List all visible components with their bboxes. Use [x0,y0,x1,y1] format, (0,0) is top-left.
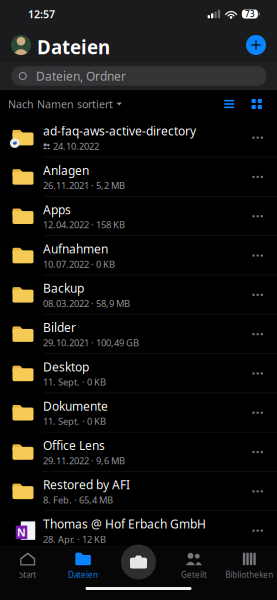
button[interactable]: Scan document [121,544,156,579]
staticText: Restored by AFI [43,477,130,493]
staticText: Office Lens [43,437,105,453]
staticText: 12:57 [28,7,55,21]
staticText: ad-faq-aws-active-directory [43,123,196,139]
staticText: Start [19,569,36,580]
staticText: Dateien [37,35,110,59]
staticText: 08.03.2022 · 58,9 MB [43,297,130,309]
button[interactable]: Dateien [55,548,111,584]
button[interactable]: Grid view [243,93,270,115]
button[interactable]: Backup [0,275,277,314]
button[interactable]: Geteilt [166,548,222,584]
button[interactable]: Account [11,35,31,55]
staticText: Apps [43,202,71,217]
button[interactable]: N [0,511,277,550]
staticText: 29.11.2022 · 9,6 MB [43,454,125,467]
staticText: Thomas @ Hof Erbach GmbH [43,516,206,532]
staticText: Bilder [43,319,76,335]
staticText: 73 [245,9,255,19]
button[interactable]: Bilder [0,314,277,354]
button[interactable]: ad-faq-aws-active-directory [0,118,277,157]
button[interactable]: Dokumente [0,393,277,432]
button[interactable]: Office Lens [0,432,277,472]
staticText: 24.10.2022 [53,140,99,152]
button[interactable]: Restored by AFI [0,472,277,511]
staticText: 29.10.2021 · 100,49 GB [43,336,139,349]
staticText: 12.04.2022 · 158 KB [43,218,125,231]
staticText: 11. Sept. · 0 KB [43,376,106,388]
button[interactable]: Anlagen [0,157,277,197]
staticText: Bibliotheken [225,569,273,580]
staticText: Aufnahmen [43,241,108,257]
button[interactable]: Aufnahmen [0,236,277,275]
button[interactable] [111,548,166,584]
staticText: Backup [43,280,84,296]
staticText: 26.11.2021 · 5,2 MB [43,179,125,192]
staticText: Nach Namen sortiert [8,97,113,111]
staticText: 11. Sept. · 0 KB [43,415,106,427]
button[interactable]: New [246,35,266,55]
button[interactable]: Dateien, Ordner [0,62,277,90]
staticText: Anlagen [43,162,89,178]
button[interactable]: Bibliotheken [222,548,277,584]
staticText: Dokumente [43,398,108,414]
staticText: Desktop [43,359,89,375]
staticText: 8. Feb. · 65,4 MB [43,494,113,506]
button[interactable]: Start [0,548,55,584]
staticText: N [17,525,26,539]
button[interactable]: Desktop [0,354,277,393]
staticText: Geteilt [181,569,207,580]
button[interactable]: List view [215,93,243,115]
button[interactable]: Nach Namen sortiert [0,93,130,115]
staticText: 28. Apr. · 12 KB [43,533,106,545]
button[interactable]: Apps [0,197,277,236]
staticText: 10.07.2022 · 0 KB [43,258,115,270]
staticText: Dateien [68,569,98,580]
staticText: Dateien, Ordner [36,68,126,84]
